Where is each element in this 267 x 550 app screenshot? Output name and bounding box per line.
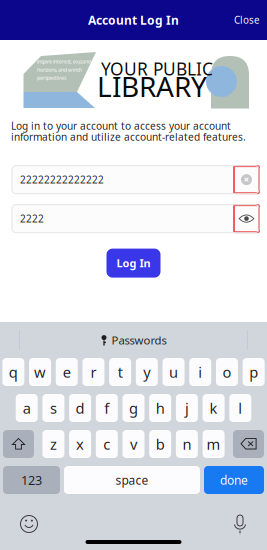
button[interactable]: Show password — [234, 205, 259, 232]
button[interactable]: b — [149, 430, 171, 458]
button[interactable]: Shift — [3, 430, 34, 458]
staticText: n — [182, 434, 191, 454]
button[interactable]: s — [42, 394, 64, 422]
button[interactable]: u — [162, 358, 184, 386]
staticText: o — [222, 362, 231, 382]
staticText: k — [210, 398, 218, 418]
staticText: q — [9, 362, 18, 382]
staticText: x — [76, 434, 84, 454]
staticText: j — [185, 398, 189, 418]
staticText: g — [129, 398, 138, 418]
button[interactable]: w — [29, 358, 51, 386]
staticText: horizons, and enrich — [37, 66, 82, 73]
staticText: done — [220, 472, 248, 488]
staticText: 22222222222222 — [20, 173, 104, 186]
staticText: f — [104, 398, 109, 418]
staticText: perspectives — [37, 74, 66, 81]
staticText: d — [76, 398, 85, 418]
button[interactable]: e — [56, 358, 78, 386]
staticText: p — [249, 362, 258, 382]
staticText: w — [34, 362, 46, 382]
staticText: 2222 — [20, 212, 44, 225]
button[interactable]: g — [122, 394, 144, 422]
button[interactable]: f — [96, 394, 118, 422]
staticText: c — [103, 434, 110, 454]
staticText: r — [90, 362, 96, 382]
button[interactable]: v — [122, 430, 144, 458]
button[interactable]: z — [42, 430, 64, 458]
button[interactable]: c — [96, 430, 118, 458]
button[interactable]: Emoji — [14, 509, 44, 539]
button[interactable]: done — [204, 466, 264, 494]
button[interactable]: l — [229, 394, 251, 422]
staticText: v — [130, 434, 137, 454]
button[interactable]: o — [216, 358, 238, 386]
staticText: Close — [234, 13, 260, 27]
staticText: Passwords — [111, 332, 166, 348]
staticText: information and utilize account-related … — [11, 130, 246, 144]
staticText: YOUR PUBLIC — [101, 57, 213, 81]
staticText: u — [169, 362, 178, 382]
button[interactable]: p — [243, 358, 265, 386]
staticText: LIBRARY — [97, 67, 207, 105]
staticText: b — [156, 434, 165, 454]
staticText: t — [118, 362, 123, 382]
button[interactable]: q — [2, 358, 24, 386]
button[interactable]: y — [136, 358, 158, 386]
staticText: inspire interest, expand — [37, 58, 91, 65]
staticText: space — [115, 472, 148, 488]
button[interactable]: a — [16, 394, 38, 422]
staticText: e — [63, 362, 71, 382]
button[interactable]: x — [69, 430, 91, 458]
button[interactable]: Dictation — [227, 508, 253, 540]
staticText: h — [156, 398, 165, 418]
staticText: z — [50, 434, 57, 454]
button[interactable]: i — [189, 358, 211, 386]
button[interactable]: Delete — [233, 430, 264, 458]
button[interactable]: j — [176, 394, 198, 422]
staticText: m — [207, 434, 221, 454]
staticText: Account Log In — [88, 12, 179, 28]
staticText: y — [143, 362, 150, 382]
button[interactable]: d — [69, 394, 91, 422]
button[interactable]: 123 — [3, 466, 60, 494]
button[interactable]: m — [203, 430, 225, 458]
button[interactable]: Close — [225, 4, 267, 36]
staticText: s — [50, 398, 57, 418]
staticText: Log in to your account to access your ac… — [11, 119, 231, 133]
button[interactable]: h — [149, 394, 171, 422]
button[interactable]: n — [176, 430, 198, 458]
button[interactable]: Log In — [106, 249, 160, 278]
button[interactable]: space — [64, 466, 200, 494]
staticText: 123 — [21, 471, 42, 489]
staticText: Log In — [116, 256, 150, 271]
staticText: a — [23, 398, 31, 418]
staticText: l — [238, 398, 242, 418]
staticText: i — [198, 362, 202, 382]
button[interactable]: Passwords — [92, 324, 174, 356]
button[interactable]: t — [109, 358, 131, 386]
button[interactable]: Clear text — [234, 166, 259, 193]
button[interactable]: k — [203, 394, 225, 422]
button[interactable]: r — [82, 358, 104, 386]
